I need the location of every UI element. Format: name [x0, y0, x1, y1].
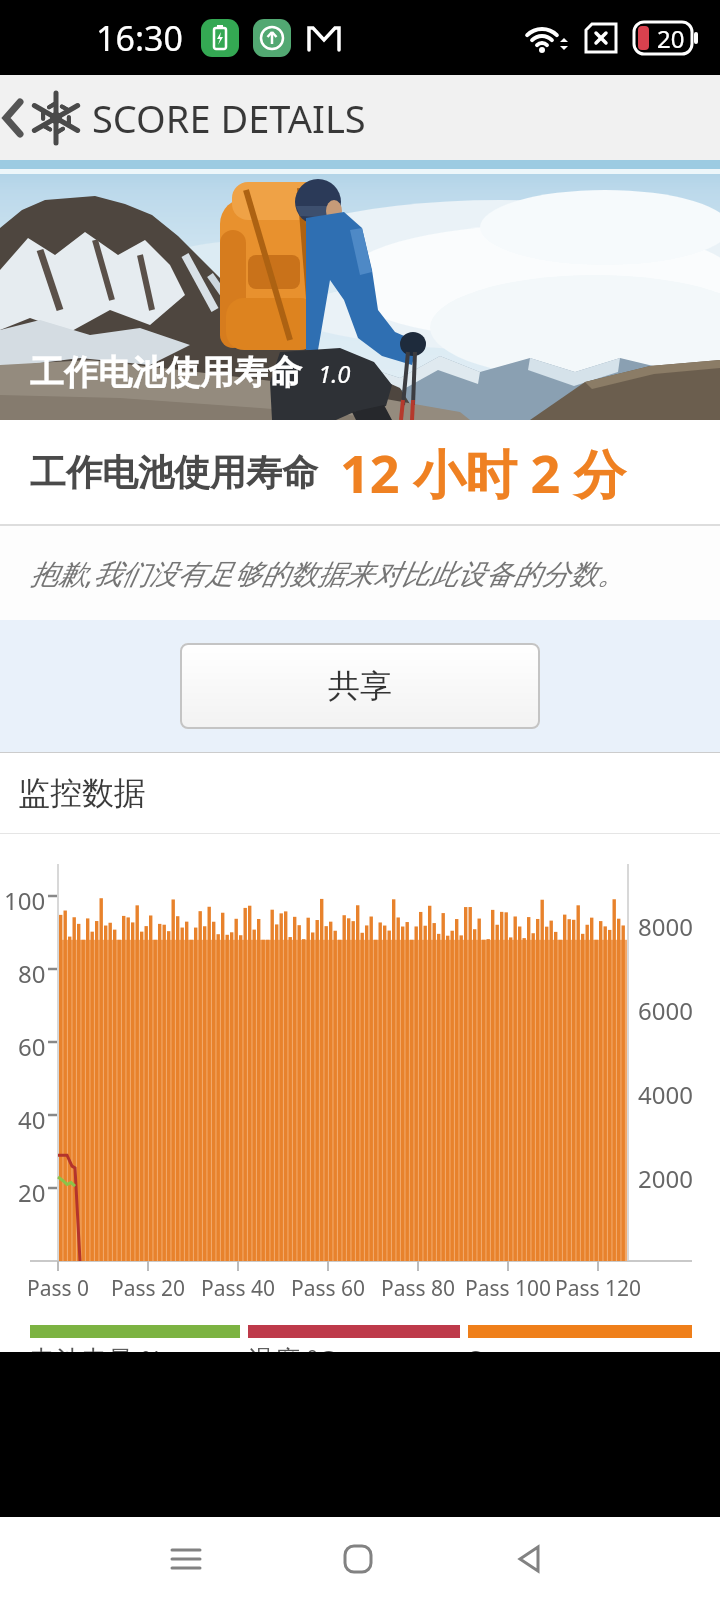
staticText: Pass 100 [465, 1274, 552, 1303]
staticText: 6000 [638, 994, 693, 1027]
staticText: Pass 120 [555, 1274, 642, 1303]
staticText: 4000 [638, 1078, 693, 1111]
staticText: 60 [18, 1030, 46, 1063]
staticText: 工作电池使用寿命 [30, 351, 302, 394]
staticText: 监控数据 [18, 773, 146, 813]
staticText: Pass 20 [111, 1274, 186, 1303]
staticText: 电池电量 % [30, 1341, 163, 1377]
staticText: 2000 [638, 1162, 693, 1195]
staticText: Pass 40 [201, 1274, 276, 1303]
button[interactable]: 共享 [180, 643, 540, 729]
staticText: Pass 0 [27, 1274, 90, 1303]
button[interactable] [318, 1517, 398, 1600]
staticText: 40 [18, 1103, 46, 1136]
staticText: 100 [4, 884, 46, 917]
staticText: 80 [18, 957, 46, 990]
staticText: Pass 80 [381, 1274, 456, 1303]
staticText: Pass 60 [291, 1274, 366, 1303]
button[interactable] [490, 1517, 570, 1600]
staticText: 12 小时 2 分 [340, 437, 626, 508]
staticText: 20 [18, 1176, 46, 1209]
button[interactable] [146, 1517, 226, 1600]
staticText: SCORE DETAILS [92, 92, 366, 144]
staticText: 抱歉,我们没有足够的数据来对比此设备的分数。 [30, 554, 626, 592]
button[interactable]: SCORE DETAILS [0, 75, 720, 160]
staticText: 1.0 [318, 357, 351, 390]
staticText: 16:30 [96, 15, 183, 61]
staticText: 8000 [638, 910, 693, 943]
staticText: 共享 [328, 666, 392, 706]
staticText: 20 [657, 22, 685, 55]
staticText: Score per pass [468, 1341, 646, 1376]
staticText: 温度 °C [248, 1341, 335, 1377]
staticText: 工作电池使用寿命 [30, 450, 318, 495]
